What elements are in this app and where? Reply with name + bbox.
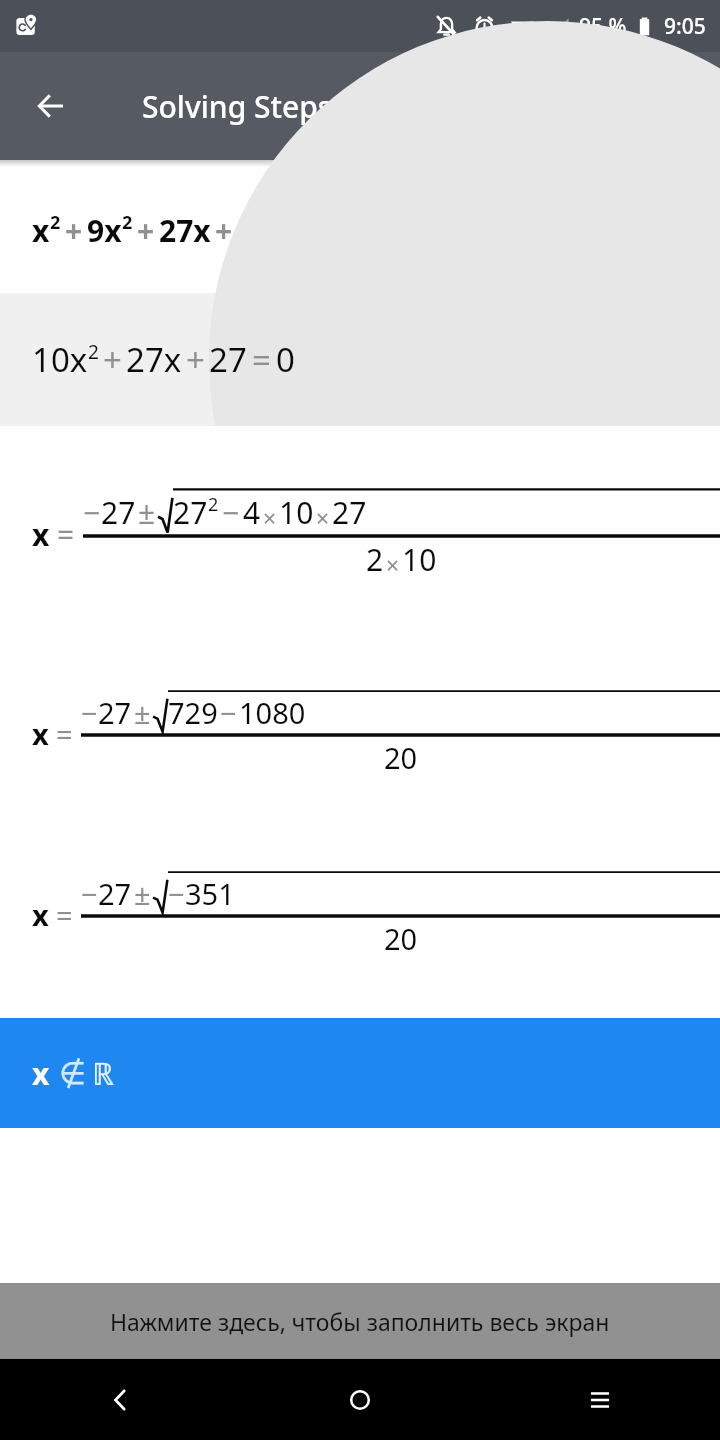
staticText: ± <box>134 874 151 913</box>
staticText: 27x <box>126 337 182 382</box>
button[interactable]: x <box>0 642 720 824</box>
staticText: ± <box>138 492 156 533</box>
staticText: − <box>81 693 98 732</box>
button[interactable]: x <box>0 426 720 642</box>
staticText: × <box>386 549 400 580</box>
staticText: 27 <box>237 210 272 251</box>
staticText: Нажмите здесь, чтобы заполнить весь экра… <box>110 1306 610 1337</box>
button[interactable]: Recent apps <box>480 1359 720 1440</box>
staticText: 10 <box>279 492 314 533</box>
staticText: ℝ <box>92 1052 115 1094</box>
button[interactable]: 10x <box>0 293 720 426</box>
staticText: 27 <box>98 874 132 913</box>
staticText: = <box>56 714 73 753</box>
staticText: − <box>83 492 101 533</box>
staticText: 10 <box>402 539 437 580</box>
staticText: 9x <box>87 210 122 251</box>
staticText: 27 <box>332 492 367 533</box>
staticText: − <box>168 874 185 913</box>
staticText: x <box>32 514 50 555</box>
staticText: 95 % <box>579 12 627 41</box>
staticText: x <box>32 1053 50 1094</box>
staticText: ± <box>134 693 151 732</box>
staticText: x <box>32 210 50 251</box>
staticText: x <box>32 714 49 753</box>
button[interactable]: x <box>0 824 720 1004</box>
button[interactable]: x <box>0 1018 720 1128</box>
staticText: + <box>103 337 122 382</box>
staticText: − <box>220 693 237 732</box>
staticText: 20 <box>384 738 418 777</box>
staticText: ∉ <box>59 1055 87 1091</box>
staticText: + <box>65 210 83 251</box>
staticText: = <box>252 337 271 382</box>
staticText: 27x <box>159 210 211 251</box>
staticText: 27 <box>173 492 208 533</box>
staticText: 27 <box>98 693 132 732</box>
button[interactable]: x <box>0 167 720 293</box>
staticText: 10x <box>32 337 88 382</box>
button[interactable]: Back <box>0 1359 240 1440</box>
staticText: 20 <box>384 919 418 958</box>
staticText: 27 <box>101 492 136 533</box>
button[interactable]: Home <box>240 1359 480 1440</box>
staticText: + <box>137 210 155 251</box>
staticText: = <box>57 514 75 555</box>
staticText: − <box>222 492 240 533</box>
staticText: 2 <box>208 492 219 517</box>
staticText: + <box>186 337 205 382</box>
staticText: x <box>32 895 49 934</box>
staticText: 729 <box>168 693 218 732</box>
staticText: 27 <box>209 337 247 382</box>
staticText: 2 <box>50 210 61 235</box>
staticText: × <box>263 502 277 533</box>
staticText: 351 <box>185 874 235 913</box>
staticText: × <box>316 502 330 533</box>
staticText: 2 <box>366 539 384 580</box>
button[interactable]: Back <box>20 75 82 137</box>
staticText: 9:05 <box>664 12 706 41</box>
staticText: 0 <box>276 337 295 382</box>
staticText: 2 <box>88 339 99 365</box>
button[interactable]: Нажмите здесь, чтобы заполнить весь экра… <box>0 1283 720 1359</box>
staticText: = <box>56 895 73 934</box>
staticText: − <box>81 874 98 913</box>
staticText: 4 <box>243 492 261 533</box>
staticText: 1080 <box>239 693 306 732</box>
staticText: Solving Steps <box>142 86 333 127</box>
staticText: 2 <box>122 210 133 235</box>
staticText: + <box>215 210 233 251</box>
